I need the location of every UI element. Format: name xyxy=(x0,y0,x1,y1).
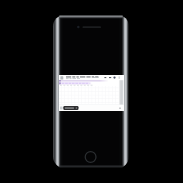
button[interactable]: Account xyxy=(109,76,113,80)
button[interactable]: More options xyxy=(114,76,118,80)
button[interactable]: Downloaded file xyxy=(64,82,79,87)
